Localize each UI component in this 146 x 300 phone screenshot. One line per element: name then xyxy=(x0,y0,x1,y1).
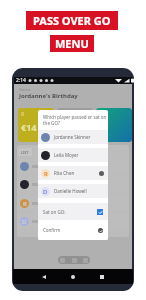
button[interactable]: Back xyxy=(39,272,49,282)
staticText: Confirm xyxy=(43,227,61,233)
staticText: PASS OVER GO xyxy=(33,13,111,28)
button[interactable]: Sat on GO: xyxy=(38,203,108,220)
staticText: Jordanne's Birthday xyxy=(19,92,78,100)
staticText: Which player passed or sat on xyxy=(43,114,107,120)
staticText: R xyxy=(44,170,48,178)
staticText: 2:14 xyxy=(16,77,26,84)
button[interactable]: R xyxy=(17,196,129,210)
button[interactable]: Home xyxy=(68,272,78,282)
button[interactable]: Leila Moyer xyxy=(38,148,108,162)
staticText: R xyxy=(23,200,27,208)
button[interactable]: PASS OVER GO xyxy=(26,11,118,30)
staticText: Leila Moyer xyxy=(54,152,79,158)
button[interactable]: D xyxy=(38,184,108,198)
button[interactable]: Player actions xyxy=(58,256,90,264)
button[interactable] xyxy=(17,159,129,173)
button[interactable]: Confirm xyxy=(38,220,108,240)
staticText: D xyxy=(22,218,27,226)
button[interactable]: MENU xyxy=(50,35,94,52)
button[interactable]: D xyxy=(17,214,129,228)
staticText: the GO? xyxy=(43,120,60,126)
button[interactable]: Jordanne Skinner xyxy=(38,130,108,144)
button[interactable]: 0 xyxy=(96,108,132,142)
staticText: €14 xyxy=(21,121,37,133)
staticText: Danielle Howell xyxy=(54,188,87,194)
staticText: D xyxy=(43,188,48,196)
button[interactable] xyxy=(57,108,93,142)
button[interactable]: B xyxy=(18,108,54,142)
staticText: B xyxy=(21,111,25,118)
staticText: Jordanne Skinner xyxy=(54,134,91,140)
staticText: ITY xyxy=(99,129,107,136)
button[interactable]: Recent apps xyxy=(97,272,107,282)
button[interactable]: LIST xyxy=(18,148,32,156)
button[interactable]: R xyxy=(38,166,108,180)
button[interactable] xyxy=(17,177,129,191)
staticText: Game: xyxy=(19,87,32,92)
staticText: Sat on GO: xyxy=(43,209,66,215)
staticText: 0 xyxy=(99,111,105,123)
staticText: LIST xyxy=(21,150,29,155)
staticText: MENU xyxy=(55,36,89,51)
staticText: Rita Chen xyxy=(54,170,75,176)
